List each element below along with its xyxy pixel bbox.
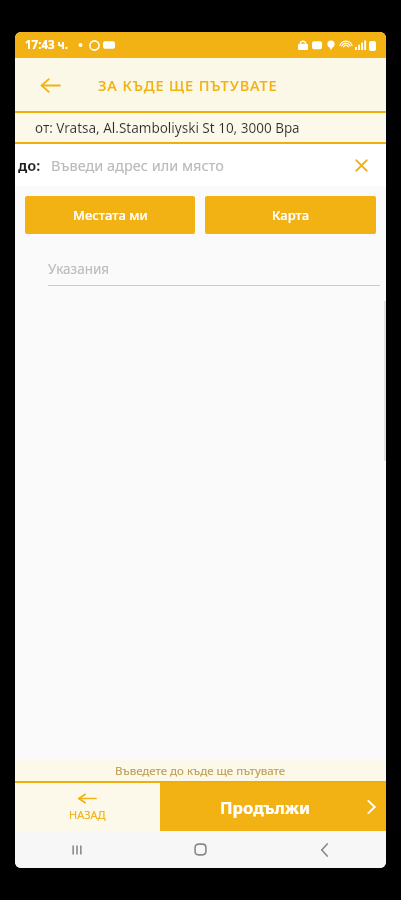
button[interactable]: Изчисти [348, 152, 374, 178]
staticText: Продължи [220, 796, 311, 818]
button[interactable]: Назад [33, 68, 67, 102]
staticText: Местата ми [73, 206, 148, 224]
staticText: НАЗАД [69, 807, 106, 822]
staticText: ЗА КЪДЕ ЩЕ ПЪТУВАТЕ [98, 75, 278, 95]
button[interactable]: Указания [48, 260, 380, 286]
staticText: до: [18, 155, 41, 175]
staticText: 17:43 ч. [25, 37, 69, 53]
button[interactable]: НАЗАД [15, 783, 160, 831]
staticText: Карта [272, 206, 310, 224]
staticText: Въведете до къде ще пътувате [115, 763, 286, 779]
button[interactable]: Местата ми [25, 196, 195, 234]
button[interactable]: Скорошни [15, 831, 138, 868]
button[interactable]: до: [15, 144, 386, 186]
button[interactable]: от: Vratsa, Al.Stamboliyski St 10, 3000 … [15, 111, 386, 144]
button[interactable]: Начало [138, 831, 262, 868]
button[interactable]: Карта [205, 196, 376, 234]
staticText: Указания [48, 260, 110, 278]
staticText: от: Vratsa, Al.Stamboliyski St 10, 3000 … [35, 119, 300, 137]
button[interactable]: Назад [262, 831, 386, 868]
staticText: Въведи адрес или място [51, 155, 224, 175]
button[interactable]: Продължи [160, 783, 386, 831]
